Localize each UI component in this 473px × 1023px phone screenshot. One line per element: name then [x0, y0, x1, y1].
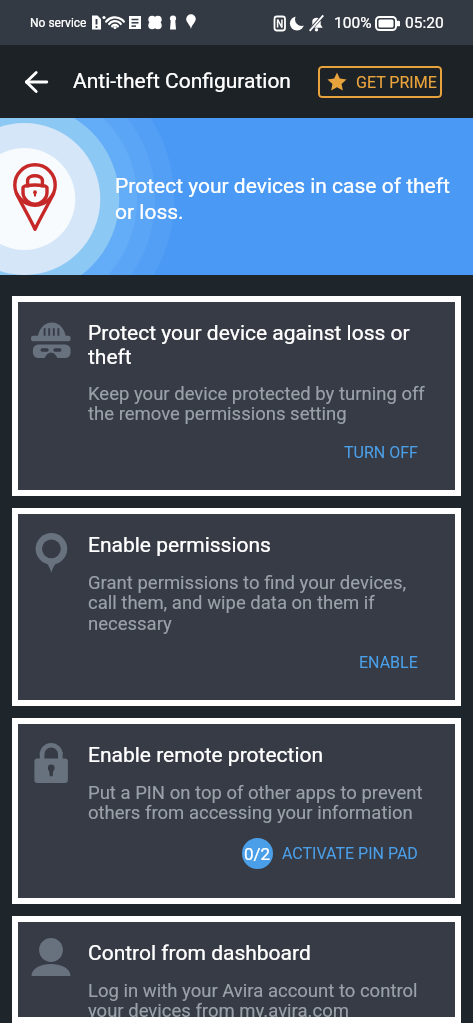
staticText: Enable permissions: [88, 533, 271, 558]
button[interactable]: Enable permissions: [18, 514, 455, 700]
button[interactable]: Enable remote protection: [18, 724, 455, 898]
staticText: Enable remote protection: [88, 743, 324, 768]
staticText: TURN OFF: [344, 443, 418, 462]
button[interactable]: Back: [12, 58, 60, 106]
staticText: 100%: [334, 14, 372, 32]
staticText: Keep your device protected by turning of…: [88, 383, 428, 425]
staticText: No service: [30, 16, 87, 30]
staticText: Log in with your Avira account to contro…: [88, 980, 428, 1017]
button[interactable]: GET PRIME: [318, 66, 442, 98]
staticText: ACTIVATE PIN PAD: [282, 844, 418, 863]
staticText: GET PRIME: [356, 73, 437, 92]
button[interactable]: ENABLE: [359, 653, 418, 672]
staticText: Anti-theft Configuration: [73, 69, 291, 94]
button[interactable]: Control from dashboard: [18, 922, 455, 1017]
staticText: Control from dashboard: [88, 941, 311, 966]
staticText: 05:20: [405, 14, 444, 32]
staticText: ENABLE: [359, 653, 418, 672]
staticText: Grant permissions to find your devices, …: [88, 572, 428, 635]
staticText: 0/2: [244, 844, 271, 864]
button[interactable]: 0/2: [242, 838, 418, 869]
staticText: Protect your devices in case of theft or…: [115, 174, 453, 224]
staticText: Protect your device against loss or thef…: [88, 321, 428, 369]
staticText: Put a PIN on top of other apps to preven…: [88, 782, 428, 824]
button[interactable]: Protect your device against loss or thef…: [18, 302, 455, 490]
button[interactable]: TURN OFF: [344, 443, 418, 462]
